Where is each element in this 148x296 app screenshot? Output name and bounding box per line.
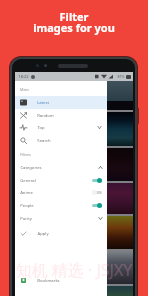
button[interactable]: Latest bbox=[15, 96, 107, 109]
staticText: 知机 精选 · JSJXY bbox=[0, 259, 148, 281]
button[interactable]: General bbox=[15, 174, 107, 187]
staticText: General bbox=[20, 178, 36, 184]
staticText: People bbox=[20, 203, 34, 209]
staticText: Filters bbox=[20, 152, 31, 157]
button[interactable]: Apply bbox=[15, 227, 107, 240]
staticText: Filter images for you bbox=[0, 9, 148, 36]
staticText: Bookmarks bbox=[37, 278, 60, 284]
button[interactable]: Search bbox=[15, 134, 107, 147]
button[interactable]: Anime bbox=[15, 186, 107, 199]
button[interactable]: People bbox=[15, 199, 107, 212]
staticText: Main bbox=[20, 87, 29, 92]
button[interactable]: Categories bbox=[15, 161, 107, 174]
staticText: Anime bbox=[20, 190, 33, 196]
button[interactable]: Purity bbox=[15, 212, 107, 225]
button[interactable]: Top bbox=[15, 121, 107, 134]
button[interactable]: Bookmarks bbox=[15, 274, 107, 287]
staticText: Search bbox=[37, 138, 51, 144]
staticText: Purity bbox=[20, 216, 32, 222]
staticText: Categories bbox=[20, 165, 42, 171]
staticText: Random bbox=[37, 113, 54, 119]
staticText: 18:22 bbox=[18, 74, 29, 79]
button[interactable]: Random bbox=[15, 109, 107, 122]
staticText: Top bbox=[37, 125, 45, 131]
staticText: 81% bbox=[117, 74, 125, 79]
staticText: Latest bbox=[37, 100, 49, 106]
staticText: Apply bbox=[37, 231, 49, 237]
